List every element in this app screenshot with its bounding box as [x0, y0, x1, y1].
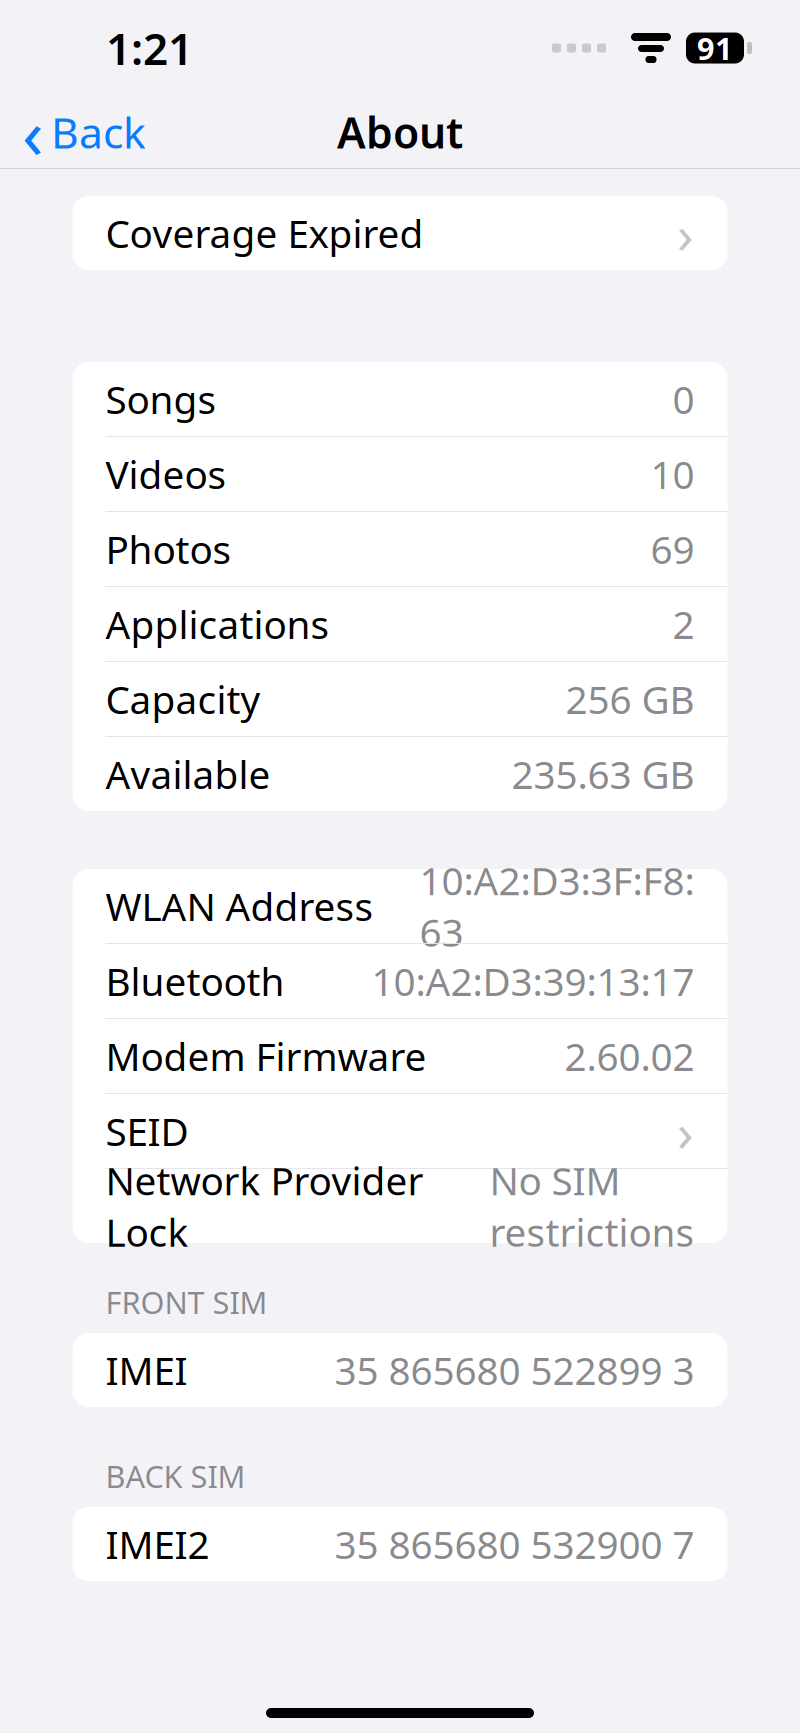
staticText: 235.63 GB: [511, 748, 694, 800]
staticText: Network Provider Lock: [105, 1155, 423, 1257]
button[interactable]: SEID: [72, 1094, 727, 1168]
staticText: Available: [105, 748, 270, 800]
staticText: 35 865680 522899 3: [334, 1344, 694, 1396]
staticText: 10: [650, 448, 694, 500]
staticText: 69: [650, 523, 694, 575]
staticText: Videos: [105, 448, 226, 500]
staticText: ›: [677, 198, 694, 268]
staticText: Photos: [105, 523, 231, 575]
staticText: Capacity: [105, 673, 260, 725]
staticText: SEID: [105, 1105, 188, 1157]
staticText: No SIM restrictions: [489, 1155, 694, 1257]
staticText: 2: [672, 598, 694, 650]
staticText: 256 GB: [565, 673, 694, 725]
staticText: Songs: [105, 373, 216, 425]
staticText: Coverage Expired: [105, 207, 423, 259]
staticText: 10:A2:D3:39:13:17: [371, 955, 694, 1007]
staticText: 1:21: [106, 19, 193, 77]
staticText: Bluetooth: [105, 955, 284, 1007]
button[interactable]: ‹: [0, 99, 160, 165]
staticText: ‹: [22, 86, 43, 178]
staticText: IMEI2: [105, 1518, 209, 1570]
staticText: 2.60.02: [564, 1030, 694, 1082]
staticText: Modem Firmware: [105, 1030, 426, 1082]
staticText: WLAN Address: [105, 880, 373, 932]
staticText: BACK SIM: [105, 1456, 245, 1496]
staticText: ›: [677, 1096, 694, 1166]
staticText: Applications: [105, 598, 329, 650]
button[interactable]: Coverage Expired: [72, 196, 727, 270]
staticText: 10:A2:D3:3F:F8:63: [419, 855, 694, 957]
staticText: FRONT SIM: [105, 1282, 267, 1322]
staticText: About: [337, 104, 463, 160]
staticText: 91: [697, 28, 733, 68]
staticText: Back: [51, 104, 146, 160]
staticText: 0: [672, 373, 694, 425]
staticText: 35 865680 532900 7: [334, 1518, 694, 1570]
staticText: IMEI: [105, 1344, 187, 1396]
